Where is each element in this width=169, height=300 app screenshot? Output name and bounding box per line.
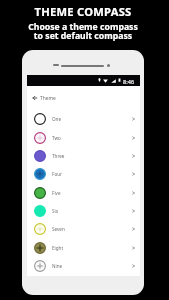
button[interactable]: Six [27,202,140,220]
staticText: Theme [40,95,56,102]
staticText: Seven [52,226,65,232]
button[interactable]: Back [31,94,39,102]
staticText: Three [52,153,65,159]
staticText: THEME COMPASS [34,4,132,19]
staticText: Eight [52,245,64,251]
staticText: 8:46 [123,78,135,86]
button[interactable]: One [27,110,140,128]
staticText: Four [52,171,62,177]
staticText: Choose a theme compass to set default co… [28,21,138,42]
button[interactable]: Three [27,147,140,165]
staticText: Six [52,208,59,214]
button[interactable]: Nine [27,257,140,275]
button[interactable]: Five [27,184,140,202]
button[interactable]: Seven [27,220,140,238]
button[interactable]: Four [27,165,140,183]
button[interactable]: Eight [27,239,140,257]
button[interactable]: Two [27,129,140,147]
staticText: Five [52,190,61,196]
staticText: Nine [52,263,63,269]
staticText: One [52,116,62,122]
staticText: Two [52,135,61,141]
